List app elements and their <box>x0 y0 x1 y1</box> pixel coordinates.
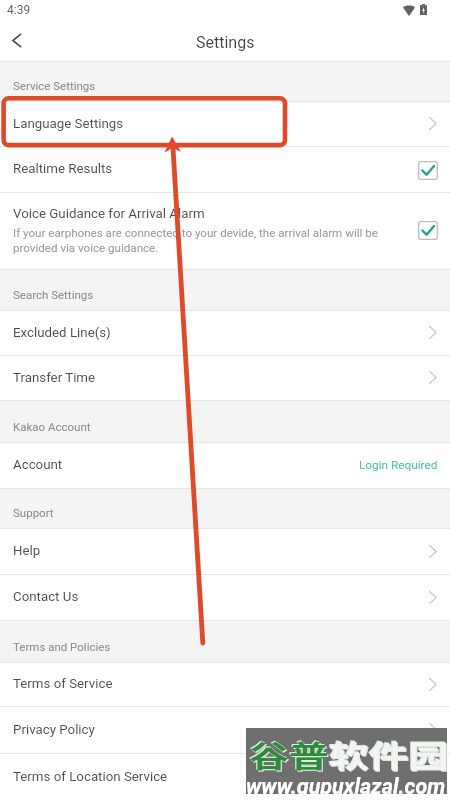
staticText: 谷普软件园 <box>248 732 447 774</box>
staticText: Account <box>13 457 63 473</box>
staticText: 软件园 <box>329 733 448 775</box>
staticText: Help <box>13 543 41 559</box>
staticText: If your earphones are connected to your … <box>13 226 395 255</box>
staticText: Settings <box>196 33 255 52</box>
staticText: 4:39 <box>7 3 31 17</box>
staticText: Terms of Service <box>13 676 113 692</box>
staticText: Privacy Policy <box>13 722 95 738</box>
staticText: Login Required <box>359 458 438 472</box>
staticText: Support <box>13 506 54 519</box>
staticText: Terms of Location Service <box>13 769 168 785</box>
button[interactable]: Privacy Policy <box>0 706 450 753</box>
button[interactable]: Contact Us <box>0 574 450 620</box>
staticText: Voice Guidance for Arrival Alarm <box>13 206 205 222</box>
staticText: 谷普软件园 <box>250 734 449 776</box>
staticText: Kakao Account <box>13 420 91 433</box>
button[interactable]: Back <box>0 23 34 57</box>
staticText: Transfer Time <box>13 370 96 386</box>
staticText: 谷普 <box>249 733 329 775</box>
button[interactable]: Voice Guidance for Arrival Alarm <box>0 192 450 269</box>
staticText: Realtime Results <box>13 161 113 177</box>
button[interactable]: Transfer Time <box>0 355 450 400</box>
button[interactable]: Account <box>0 442 450 488</box>
staticText: Language Settings <box>13 116 124 132</box>
button[interactable]: Excluded Line(s) <box>0 310 450 355</box>
button[interactable]: Terms of Location Service <box>0 753 450 800</box>
staticText: Terms and Policies <box>13 640 111 653</box>
staticText: Service Settings <box>13 79 96 92</box>
button[interactable]: Help <box>0 528 450 574</box>
button[interactable]: Realtime Results <box>0 146 450 192</box>
staticText: Excluded Line(s) <box>13 325 111 341</box>
staticText: www.gupuxlazal.com <box>246 774 446 799</box>
staticText: Contact Us <box>13 589 79 605</box>
button[interactable]: Language Settings <box>0 101 450 146</box>
button[interactable]: Terms of Service <box>0 662 450 706</box>
staticText: Search Settings <box>13 288 94 301</box>
